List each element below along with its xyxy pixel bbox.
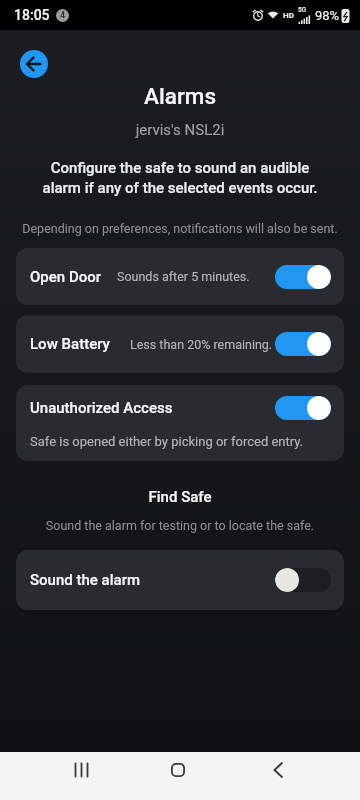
button[interactable] [20, 50, 48, 78]
staticText: Sound the alarm for testing or to locate… [0, 518, 360, 533]
button[interactable] [275, 568, 331, 592]
staticText: Depending on preferences, notifications … [0, 221, 360, 236]
staticText: Unauthorized Access [30, 399, 173, 417]
staticText: 18:05 [14, 7, 50, 23]
button[interactable]: Low Battery [16, 315, 344, 373]
staticText: Low Battery [30, 335, 110, 353]
button[interactable] [258, 756, 298, 784]
button[interactable]: Open Door [16, 248, 344, 305]
staticText: Find Safe [0, 488, 360, 506]
staticText: jervis's NSL2i [0, 121, 360, 139]
staticText: Sound the alarm [30, 571, 141, 589]
staticText: Alarms [0, 83, 360, 109]
button[interactable] [62, 756, 102, 784]
button[interactable] [275, 265, 331, 289]
staticText: Configure the safe to sound an audible a… [0, 159, 360, 196]
staticText: Safe is opened either by picking or forc… [30, 434, 304, 449]
button[interactable] [275, 332, 331, 356]
staticText: Open Door [30, 268, 102, 286]
button[interactable] [158, 756, 198, 784]
staticText: HD [283, 11, 294, 20]
button[interactable]: Sound the alarm [16, 550, 344, 610]
staticText: 98% [315, 8, 340, 23]
staticText: 4 [60, 10, 66, 21]
staticText: 5G [298, 6, 307, 14]
button[interactable]: Unauthorized Access [16, 385, 344, 461]
staticText: Less than 20% remaining. [130, 337, 273, 352]
staticText: Sounds after 5 minutes. [117, 269, 250, 284]
button[interactable] [275, 396, 331, 420]
